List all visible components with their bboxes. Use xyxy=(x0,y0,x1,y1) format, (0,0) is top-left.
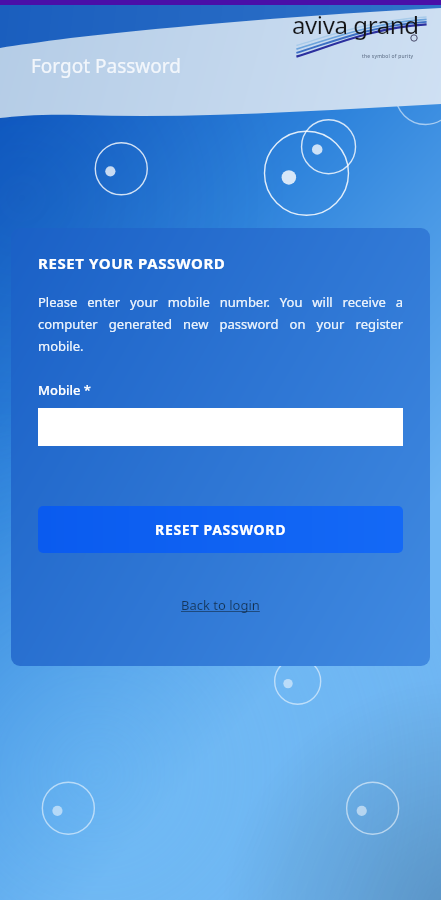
other: aviva grand logo xyxy=(288,7,428,69)
staticText: the symbol of purity xyxy=(362,53,414,60)
staticText: Mobile * xyxy=(38,381,91,399)
staticText: RESET YOUR PASSWORD xyxy=(38,253,226,273)
staticText: Please enter your mobile number. You wil… xyxy=(38,293,403,355)
button[interactable]: RESET PASSWORD xyxy=(38,506,403,553)
staticText: Forgot Password xyxy=(31,53,181,79)
staticText: RESET PASSWORD xyxy=(155,520,287,539)
staticText: aviva grand xyxy=(292,8,419,41)
button[interactable]: Back to login xyxy=(175,590,266,620)
